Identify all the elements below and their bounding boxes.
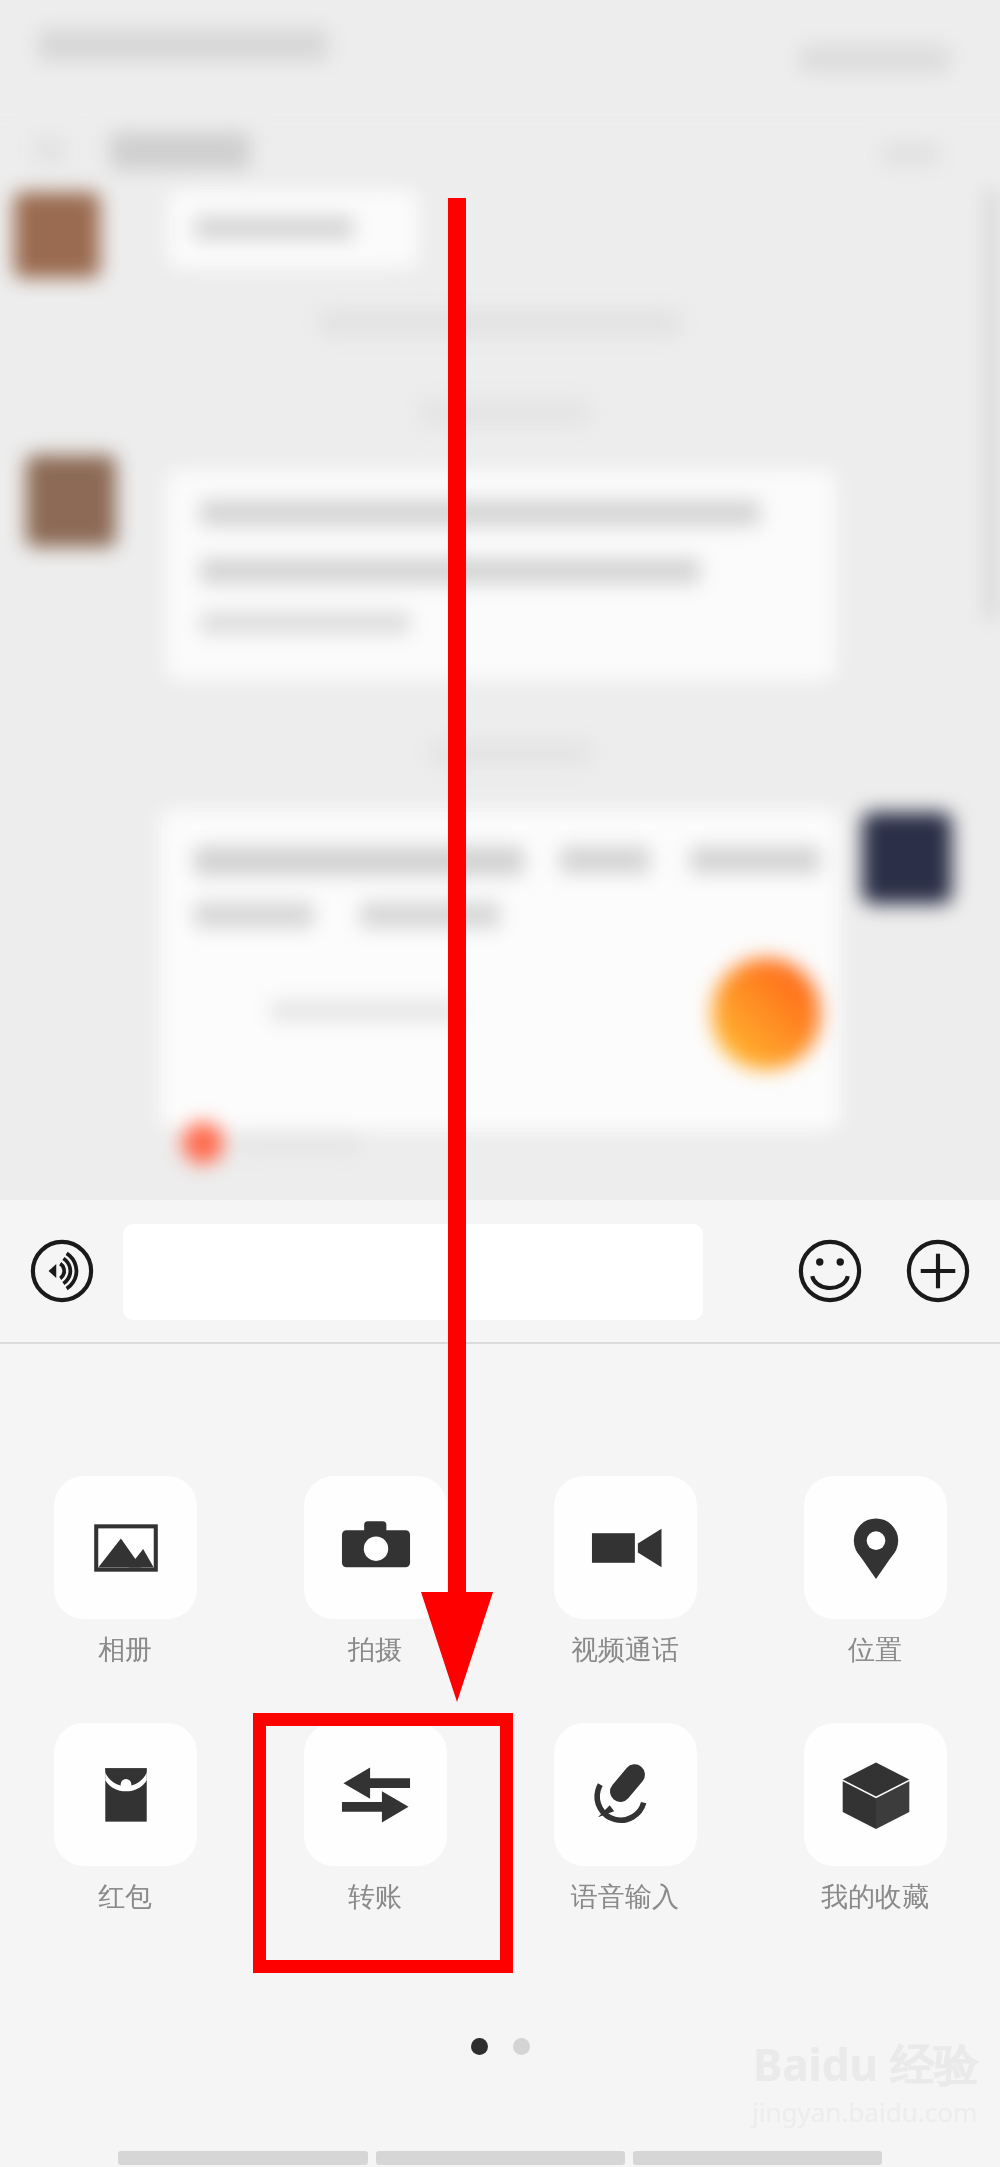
staticText: 拍摄 (348, 1633, 402, 1667)
staticText: 我的收藏 (821, 1880, 929, 1914)
staticText: Baidu 经验 (753, 2034, 978, 2094)
button[interactable]: 拍摄 (250, 1476, 500, 1667)
button[interactable]: 红包 (0, 1723, 250, 1914)
button[interactable]: 相册 (0, 1476, 250, 1667)
button[interactable]: Emoji (790, 1231, 870, 1311)
staticText: 语音输入 (571, 1880, 679, 1914)
button[interactable]: More (898, 1231, 978, 1311)
staticText: 红包 (98, 1880, 152, 1914)
staticText: 位置 (848, 1633, 902, 1667)
button[interactable]: Voice message (22, 1231, 102, 1311)
button[interactable]: 语音输入 (500, 1723, 750, 1914)
staticText: 转账 (348, 1880, 402, 1914)
button[interactable]: 我的收藏 (750, 1723, 1000, 1914)
button[interactable] (123, 1224, 703, 1320)
button[interactable]: 位置 (750, 1476, 1000, 1667)
button[interactable]: 转账 (250, 1723, 500, 1914)
staticText: 视频通话 (571, 1633, 679, 1667)
button[interactable]: 视频通话 (500, 1476, 750, 1667)
staticText: 相册 (98, 1633, 152, 1667)
